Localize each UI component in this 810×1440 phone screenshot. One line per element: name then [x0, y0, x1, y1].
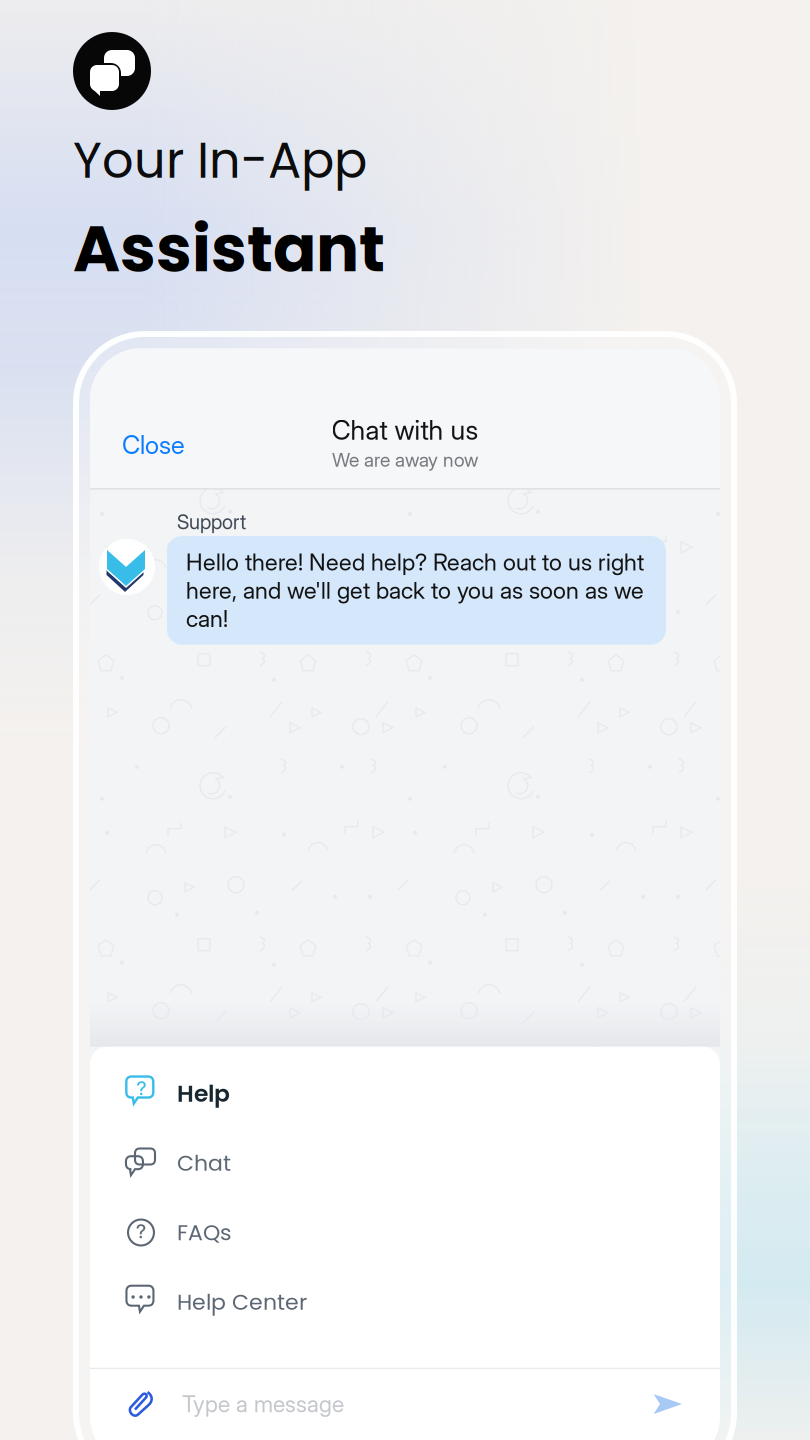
staticText: Assistant	[73, 204, 385, 294]
staticText: FAQs	[177, 1217, 231, 1248]
button[interactable]: ?	[90, 1198, 720, 1267]
staticText: ?	[136, 1220, 146, 1243]
staticText: ?	[136, 1077, 146, 1100]
staticText: Type a message	[182, 1390, 344, 1418]
staticText: Your In-App	[73, 126, 367, 195]
button[interactable]: ?	[90, 1059, 720, 1128]
button[interactable]: Send	[650, 1388, 686, 1420]
staticText: Help Center	[177, 1287, 307, 1317]
staticText: Chat	[177, 1148, 231, 1178]
staticText: Chat with us	[331, 414, 478, 446]
staticText: We are away now	[332, 448, 478, 471]
staticText: Support	[177, 510, 246, 534]
staticText: Help	[177, 1077, 230, 1110]
button[interactable]: Chat	[90, 1128, 720, 1198]
button[interactable]: Attach file	[121, 1384, 161, 1424]
staticText: Close	[122, 429, 185, 460]
button[interactable]: Close	[115, 421, 192, 468]
staticText: Hello there! Need help? Reach out to us …	[186, 548, 644, 633]
button[interactable]: Help Center	[90, 1267, 720, 1337]
